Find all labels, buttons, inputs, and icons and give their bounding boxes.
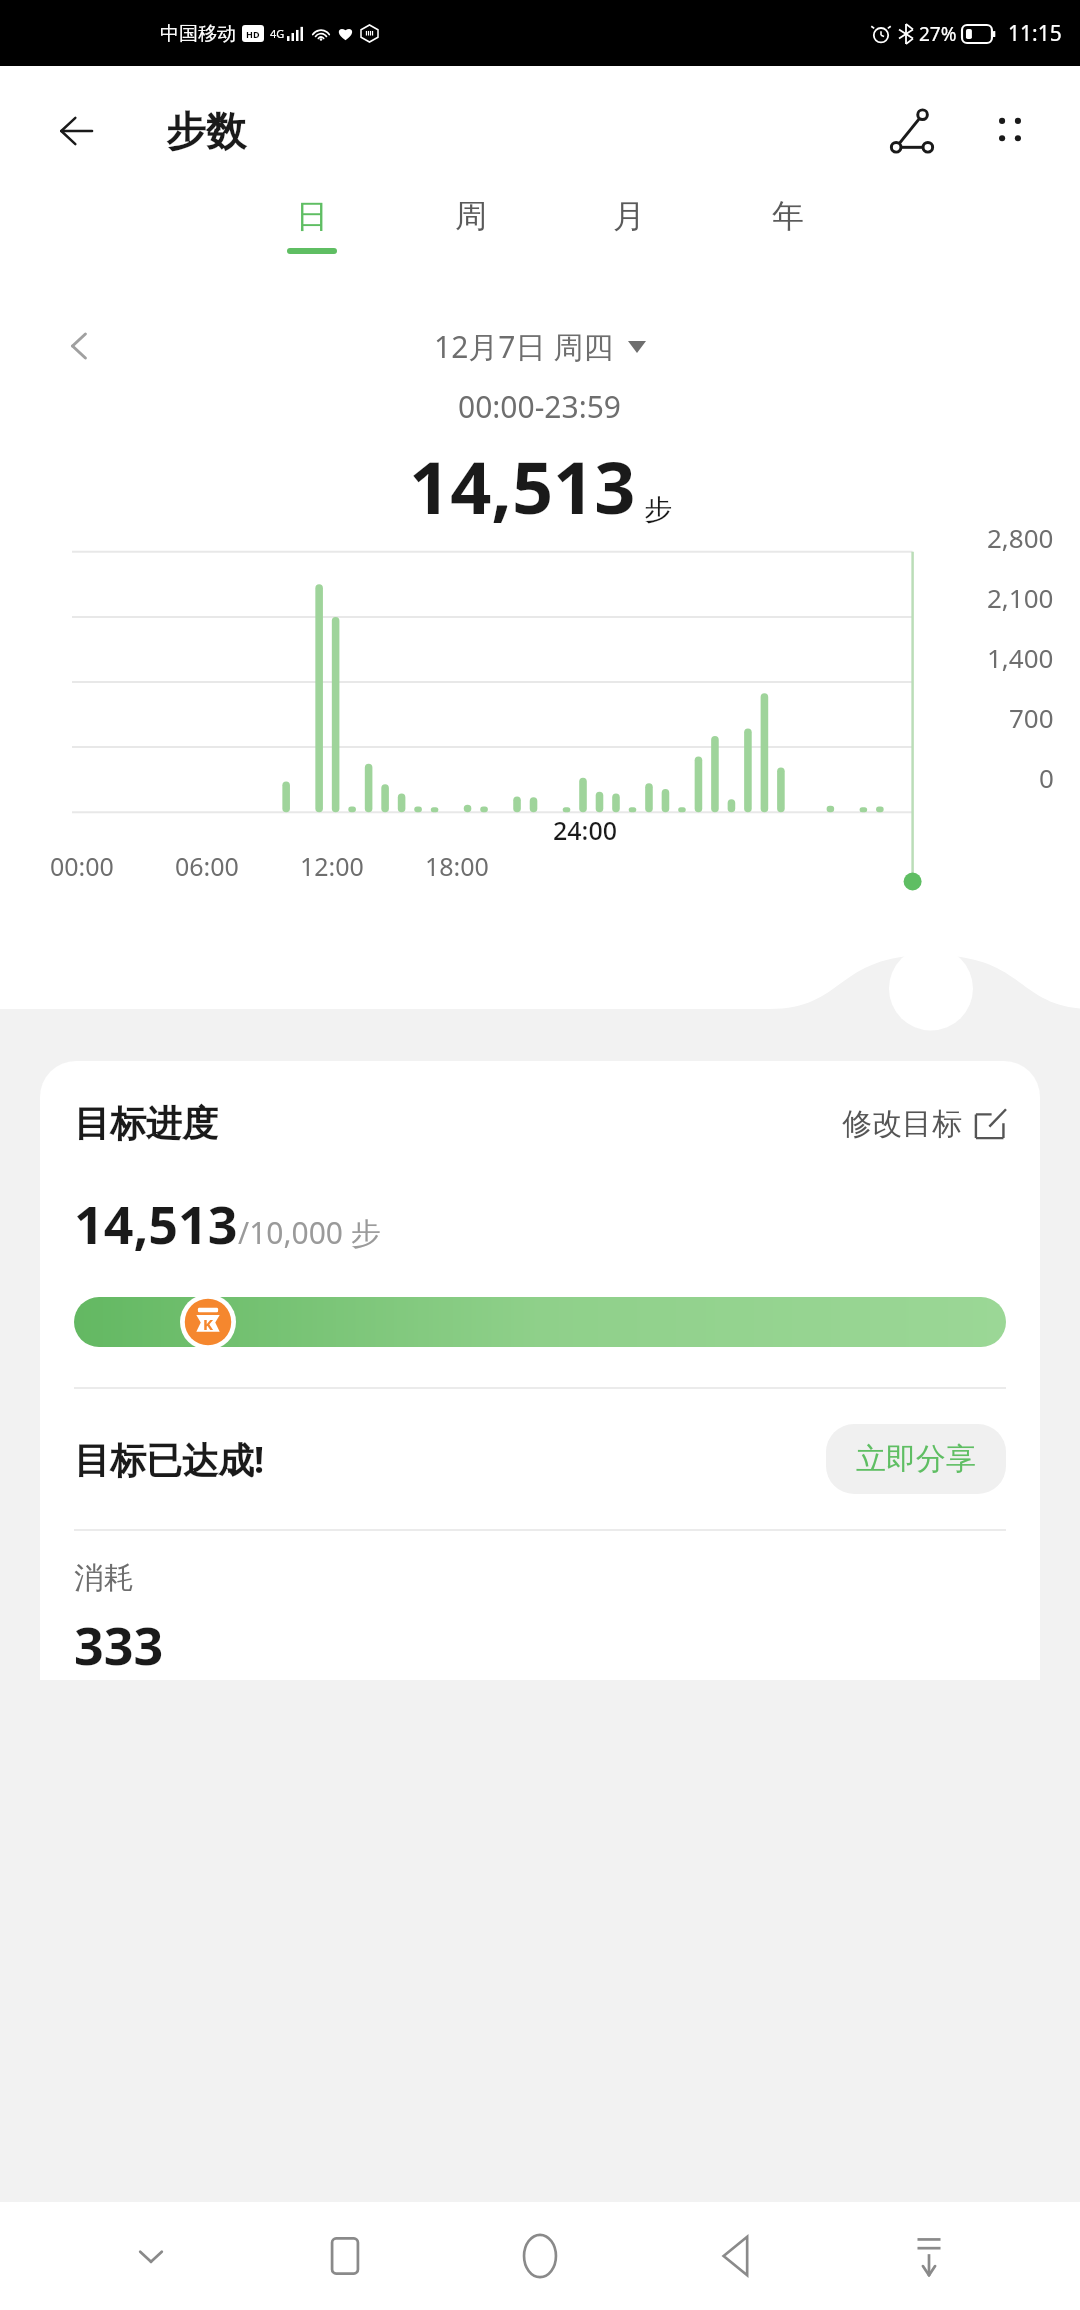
staticText: 步数 [166,106,246,156]
staticText: /10,000 步 [238,1212,381,1253]
staticText: 消耗 [74,1559,134,1597]
staticText: 00:00-23:59 [458,386,622,427]
button[interactable]: Previous day [50,316,110,376]
staticText: HD [246,28,260,40]
staticText: 12月7日 周四 [434,326,614,367]
staticText: 00:00 [50,849,114,883]
staticText: 2,800 [987,520,1054,555]
staticText: 月 [613,196,645,236]
staticText: 12:00 [300,849,364,883]
button[interactable]: 周 [439,196,503,248]
button[interactable]: Collapse [107,2212,195,2300]
staticText: 立即分享 [856,1440,976,1478]
staticText: 333 [74,1609,164,1680]
staticText: 日 [296,196,328,236]
button[interactable]: 修改目标 [842,1105,1006,1143]
staticText: 中国移动 [160,22,236,46]
button[interactable]: More options [974,95,1046,167]
staticText: K [203,1314,213,1334]
staticText: 24:00 [553,813,618,847]
button[interactable]: Back [48,101,108,161]
button[interactable]: Back [691,2212,779,2300]
staticText: 14,513 [74,1188,238,1259]
staticText: 4G [270,26,285,41]
staticText: 年 [772,196,804,236]
button[interactable]: 12月7日 周四 [434,326,646,367]
button[interactable]: 日 [280,196,344,254]
staticText: 18:00 [425,849,489,883]
staticText: 14,513 [409,437,636,535]
staticText: 0 [1039,760,1054,795]
button[interactable]: Home [496,2212,584,2300]
staticText: 11:15 [1008,19,1062,48]
staticText: 修改目标 [842,1105,962,1143]
button[interactable]: 年 [756,196,820,248]
staticText: 目标已达成! [74,1435,265,1484]
staticText: 700 [1009,700,1054,735]
button[interactable]: Share [876,95,948,167]
staticText: 27% [919,21,957,47]
button[interactable]: Hide navigation bar [885,2212,973,2300]
button[interactable]: Recents [301,2212,389,2300]
button[interactable]: 月 [597,196,661,248]
button[interactable]: 立即分享 [826,1424,1006,1494]
staticText: 目标进度 [74,1101,218,1146]
staticText: 2,100 [987,580,1054,615]
staticText: 步 [644,492,672,527]
staticText: 周 [455,196,487,236]
staticText: 06:00 [175,849,239,883]
staticText: 1,400 [987,640,1054,675]
